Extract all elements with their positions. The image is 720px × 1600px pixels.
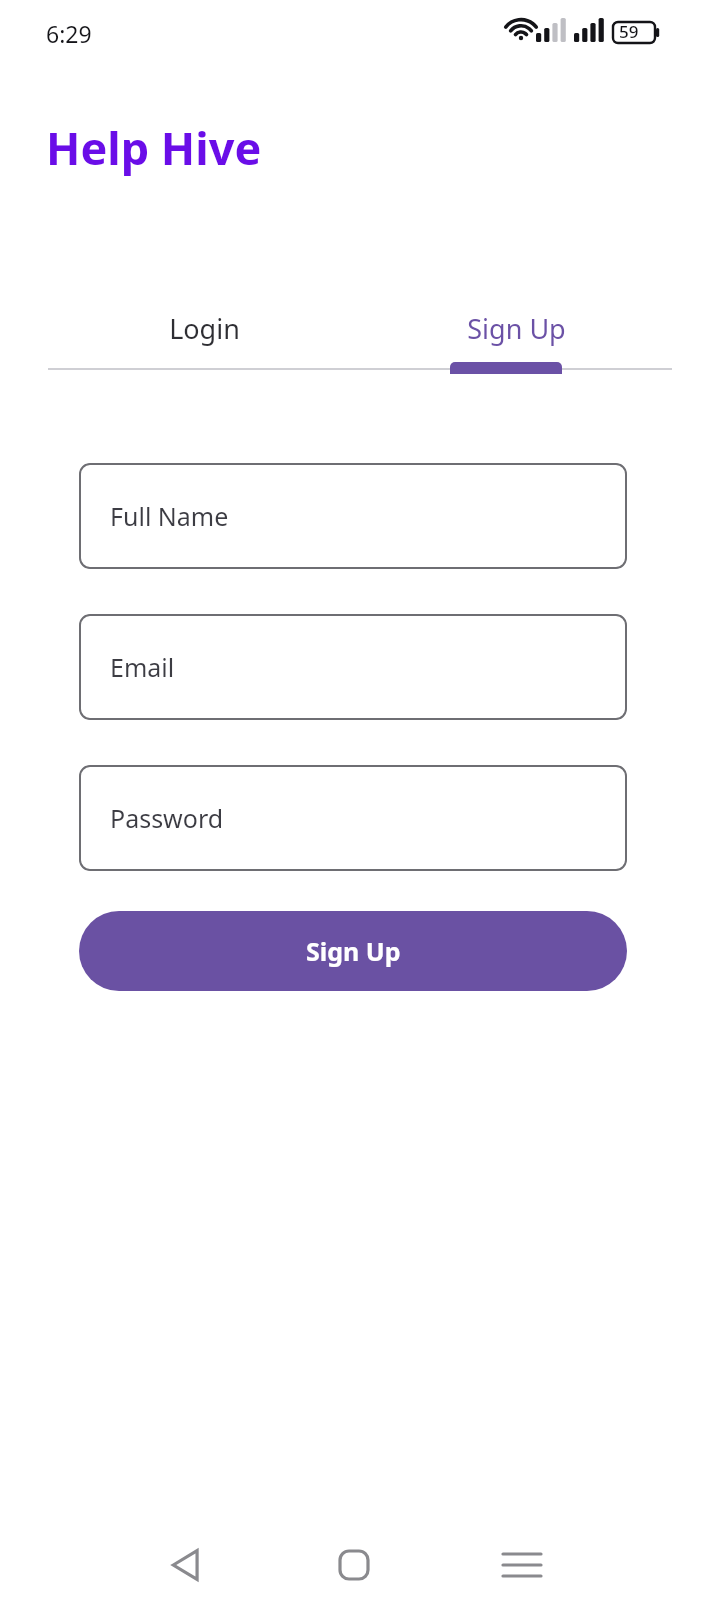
button[interactable]: Email [79,614,627,720]
staticText: Help Hive [46,117,262,178]
staticText: Password [110,801,224,835]
button[interactable]: Login [48,288,360,369]
button[interactable]: Password [79,765,627,871]
staticText: 6:29 [46,18,92,49]
staticText: Full Name [110,499,229,533]
button[interactable]: Home [314,1525,394,1600]
staticText: Login [169,310,240,347]
button[interactable]: Sign Up [79,911,627,991]
staticText: Sign Up [467,310,566,347]
button[interactable]: Sign Up [360,288,672,369]
button[interactable]: Full Name [79,463,627,569]
staticText: 59 [619,20,639,43]
button[interactable]: Recent apps [482,1525,562,1600]
staticText: Email [110,650,175,684]
button[interactable]: Back [147,1525,227,1600]
staticText: Sign Up [306,934,401,968]
